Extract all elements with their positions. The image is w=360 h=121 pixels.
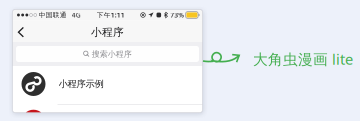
staticText: 小程序 bbox=[91, 26, 124, 39]
staticText: 下午1:11 bbox=[97, 11, 125, 19]
staticText: 小程序示例 bbox=[58, 78, 103, 90]
staticText: 搜索小程序 bbox=[90, 49, 132, 59]
staticText: 4G bbox=[72, 11, 81, 19]
button[interactable]: 搜索小程序 bbox=[16, 46, 199, 62]
staticText: 中国联通 bbox=[39, 11, 67, 19]
button[interactable]: Back bbox=[12, 19, 29, 43]
button[interactable]: 小程序示例 bbox=[12, 66, 202, 102]
button[interactable] bbox=[12, 105, 202, 121]
staticText: 73% bbox=[170, 11, 184, 19]
staticText: 大角虫漫画 lite bbox=[253, 49, 353, 69]
